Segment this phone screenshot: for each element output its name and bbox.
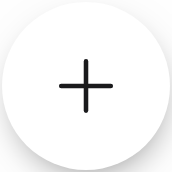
button[interactable]: Add xyxy=(2,2,170,170)
